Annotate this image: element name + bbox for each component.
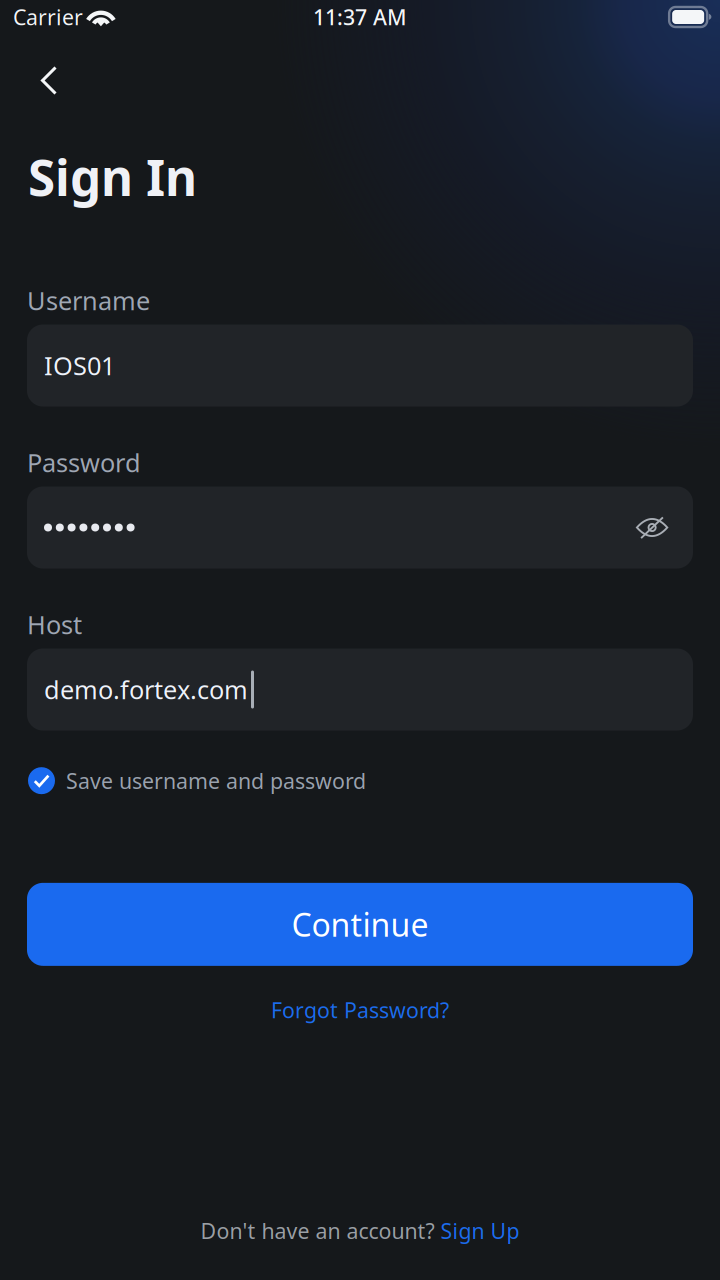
staticText: 11:37 AM (313, 3, 407, 31)
staticText: Sign Up (440, 1217, 519, 1245)
staticText: demo.fortex.com (44, 673, 248, 706)
staticText: Carrier (13, 3, 83, 31)
staticText: Sign In (28, 144, 197, 209)
button[interactable]: Save username and password (0, 757, 380, 804)
button[interactable]: Forgot Password? (0, 985, 720, 1035)
staticText: Save username and password (66, 766, 366, 795)
button[interactable]: Back (0, 54, 76, 107)
button[interactable]: Show password (636, 516, 676, 539)
button[interactable]: Sign Up (440, 1217, 519, 1245)
staticText: Forgot Password? (271, 996, 449, 1024)
staticText: Don't have an account? (200, 1217, 440, 1245)
staticText: Continue (291, 903, 428, 946)
staticText: Password (27, 446, 141, 479)
staticText: Username (27, 284, 150, 317)
button[interactable]: Continue (27, 883, 693, 966)
staticText: Host (27, 608, 82, 641)
staticText: IOS01 (44, 349, 115, 382)
